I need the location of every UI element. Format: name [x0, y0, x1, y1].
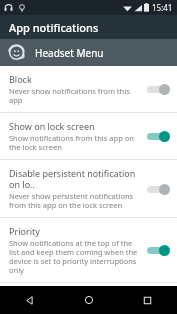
button[interactable]: Home: [59, 286, 118, 314]
staticText: App notifications: [9, 20, 99, 35]
button[interactable]: App notifications: [0, 15, 177, 39]
button[interactable]: Recent apps: [118, 286, 177, 314]
button[interactable]: Priority: [0, 218, 177, 282]
staticText: 15:41: [152, 2, 173, 13]
button[interactable]: Headset Menu: [0, 39, 177, 66]
staticText: Headset Menu: [35, 46, 104, 60]
staticText: Show notifications at the top of the lis…: [9, 238, 139, 275]
staticText: Disable persistent notification on lo..: [9, 167, 139, 190]
button[interactable]: Back: [0, 286, 59, 314]
staticText: Priority: [9, 225, 40, 237]
staticText: Show on lock screen: [9, 120, 95, 132]
button[interactable]: Toggle off: [145, 81, 171, 97]
button[interactable]: Toggle off: [145, 181, 171, 197]
staticText: Never show persistent notifications from…: [9, 191, 139, 210]
button[interactable]: Show on lock screen: [0, 113, 177, 159]
staticText: Never show notifications from this app: [9, 86, 139, 105]
button[interactable]: Block: [0, 66, 177, 112]
button[interactable]: Toggle on: [145, 128, 171, 144]
button[interactable]: Toggle on: [145, 242, 171, 258]
staticText: Show notifications from this app on the …: [9, 133, 139, 152]
button[interactable]: Disable persistent notification on lo..: [0, 160, 177, 217]
staticText: Block: [9, 73, 32, 85]
